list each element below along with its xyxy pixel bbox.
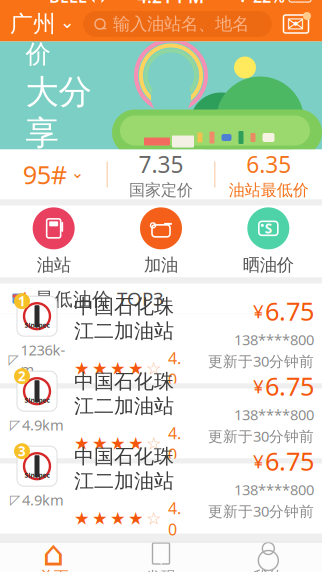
staticText: 6.75 [265, 444, 314, 478]
staticText: Sinopec [24, 471, 49, 480]
button[interactable]: ⌂ [0, 541, 107, 572]
staticText: 更新于30分钟前 [208, 501, 314, 521]
staticText: ★ [110, 509, 126, 528]
staticText: ★ [128, 509, 144, 528]
staticText: 1236km [20, 340, 65, 379]
staticText: ¥ [253, 374, 264, 398]
staticText: ★ [92, 509, 108, 528]
staticText: 95# [23, 158, 67, 191]
staticText: Sinopec [24, 321, 49, 330]
staticText: 138****800 [234, 480, 314, 499]
staticText: ◸ [10, 417, 20, 432]
staticText: ★ [74, 359, 90, 378]
staticText: ↓ [18, 289, 31, 308]
staticText: 3 [18, 442, 26, 460]
staticText: 4.0 [168, 422, 181, 465]
staticText: 中国石化珠江二加油站 [74, 369, 174, 418]
staticText: 广州 [10, 10, 56, 38]
staticText: 更新于30分钟前 [208, 426, 314, 446]
button[interactable]: 广州 [10, 10, 75, 38]
staticText: 加油 [144, 254, 178, 276]
staticText: 138****800 [234, 330, 314, 349]
staticText: ✻ [236, 0, 249, 6]
button[interactable]: Sinopec [0, 313, 322, 383]
staticText: 最低油价 TOP3 [35, 286, 164, 311]
button[interactable]: 我的 [215, 541, 322, 572]
staticText: 7.35 [138, 149, 183, 179]
staticText: 发现 [146, 567, 176, 572]
staticText: 中国石化珠江二加油站 [74, 294, 174, 343]
staticText: ¥ [253, 449, 264, 473]
button[interactable]: S [215, 207, 322, 276]
staticText: 晒油价 [243, 254, 294, 276]
staticText: ★ [110, 434, 126, 453]
staticText: 6.75 [265, 294, 314, 328]
staticText: 4.9km [22, 415, 64, 435]
staticText: 2 [18, 367, 26, 385]
button[interactable]: 6.35 [215, 149, 322, 199]
staticText: BELL [49, 0, 87, 7]
button[interactable]: 输入油站名、地名 [83, 11, 272, 37]
staticText: ◸ [8, 352, 18, 367]
staticText: 6.35 [246, 149, 291, 179]
staticText: 我的 [253, 567, 283, 572]
button[interactable]: 95# [0, 149, 107, 199]
button[interactable]: 消息 [280, 12, 312, 36]
staticText: ★ [92, 359, 108, 378]
staticText: 国家定价 [129, 180, 193, 200]
staticText: 中国石化珠江二加油站 [74, 444, 174, 493]
staticText: ★ [92, 434, 108, 453]
staticText: ★ [128, 434, 144, 453]
staticText: 油站 [37, 254, 71, 276]
staticText: 更新于30分钟前 [208, 351, 314, 371]
staticText: ⌄ [71, 163, 84, 182]
staticText: 4.0 [168, 497, 181, 540]
staticText: 6.75 [265, 369, 314, 403]
button[interactable]: Sinopec [0, 388, 322, 458]
staticText: ▽ [155, 550, 166, 567]
staticText: ★ [74, 434, 90, 453]
staticText: 22% [253, 0, 285, 7]
staticText: ✉ [287, 12, 305, 36]
button[interactable]: Sinopec [0, 463, 322, 533]
staticText: 1 [18, 292, 26, 310]
staticText: ☆ [146, 509, 162, 528]
staticText: ☆ [146, 434, 162, 453]
button[interactable]: 加油 [107, 207, 215, 276]
staticText: 4:21 PM [137, 0, 204, 8]
staticText: ★ [74, 509, 90, 528]
button[interactable]: 7.35 [108, 149, 214, 199]
staticText: ⌂ [43, 534, 65, 572]
staticText: 138****800 [234, 405, 314, 424]
button[interactable]: ▽ [107, 541, 215, 572]
staticText: ★ [128, 359, 144, 378]
staticText: ¥ [253, 299, 264, 323]
staticText: 首页 [39, 567, 69, 572]
staticText: ⌄ [60, 12, 75, 32]
staticText: 油站最低价 [229, 180, 309, 200]
staticText: S [265, 219, 272, 237]
staticText: ◸ [10, 492, 20, 507]
staticText: 全球油价 [25, 7, 100, 70]
staticText: ☆ [146, 359, 162, 378]
staticText: 4.0 [168, 347, 181, 390]
staticText: Sinopec [24, 396, 49, 405]
staticText: 4.9km [22, 490, 64, 510]
staticText: 大分享 [25, 72, 91, 154]
staticText: ★ [110, 359, 126, 378]
button[interactable]: 油站 [0, 207, 107, 276]
staticText: 输入油站名、地名 [113, 13, 249, 35]
